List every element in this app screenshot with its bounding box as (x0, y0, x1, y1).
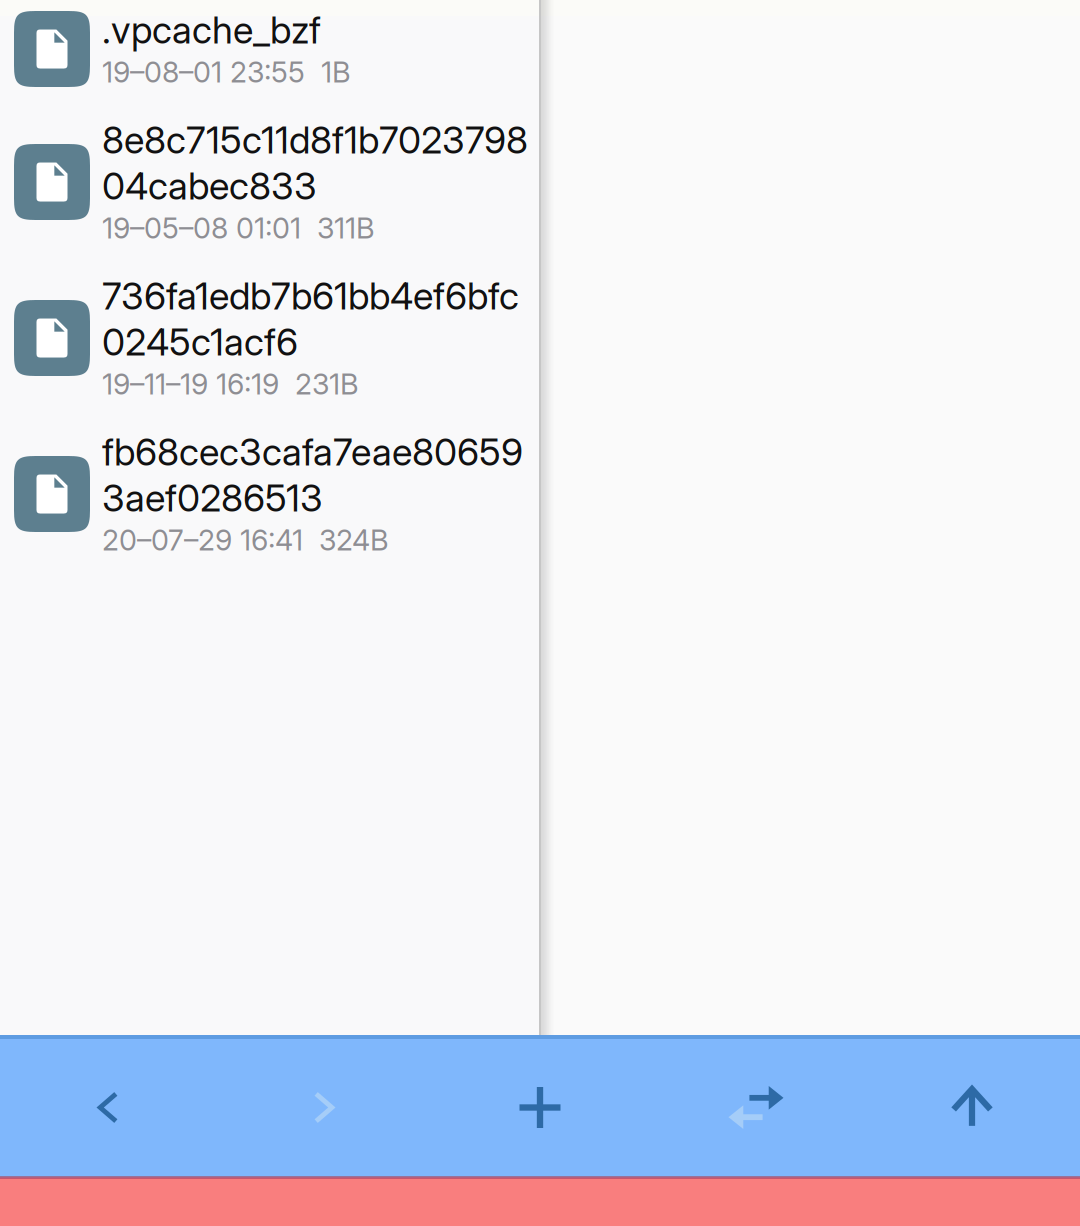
staticText: 8e8c715c11d8f1b7023798 (102, 117, 528, 163)
button[interactable]: fb68cec3cafa7eae80659 (0, 429, 539, 559)
button[interactable]: Back (0, 1039, 216, 1176)
staticText: 04cabec833 (102, 163, 317, 209)
staticText: 3aef0286513 (102, 475, 323, 521)
staticText: 19–08–01 23:55 1B (102, 55, 351, 89)
staticText: 0245c1acf6 (102, 319, 298, 365)
button[interactable]: .vpcache_bzf (0, 7, 539, 91)
button[interactable]: Upload (864, 1039, 1080, 1176)
button[interactable]: 8e8c715c11d8f1b7023798 (0, 117, 539, 247)
staticText: 20–07–29 16:41 324B (102, 523, 389, 557)
button[interactable]: 736fa1edb7b61bb4ef6bfc (0, 273, 539, 403)
staticText: 19–11–19 16:19 231B (102, 367, 359, 401)
staticText: 736fa1edb7b61bb4ef6bfc (102, 273, 519, 319)
staticText: 19–05–08 01:01 311B (102, 211, 375, 245)
staticText: fb68cec3cafa7eae80659 (102, 429, 523, 475)
staticText: .vpcache_bzf (102, 7, 321, 53)
button[interactable]: New (432, 1039, 648, 1176)
button[interactable]: Transfer (648, 1039, 864, 1176)
